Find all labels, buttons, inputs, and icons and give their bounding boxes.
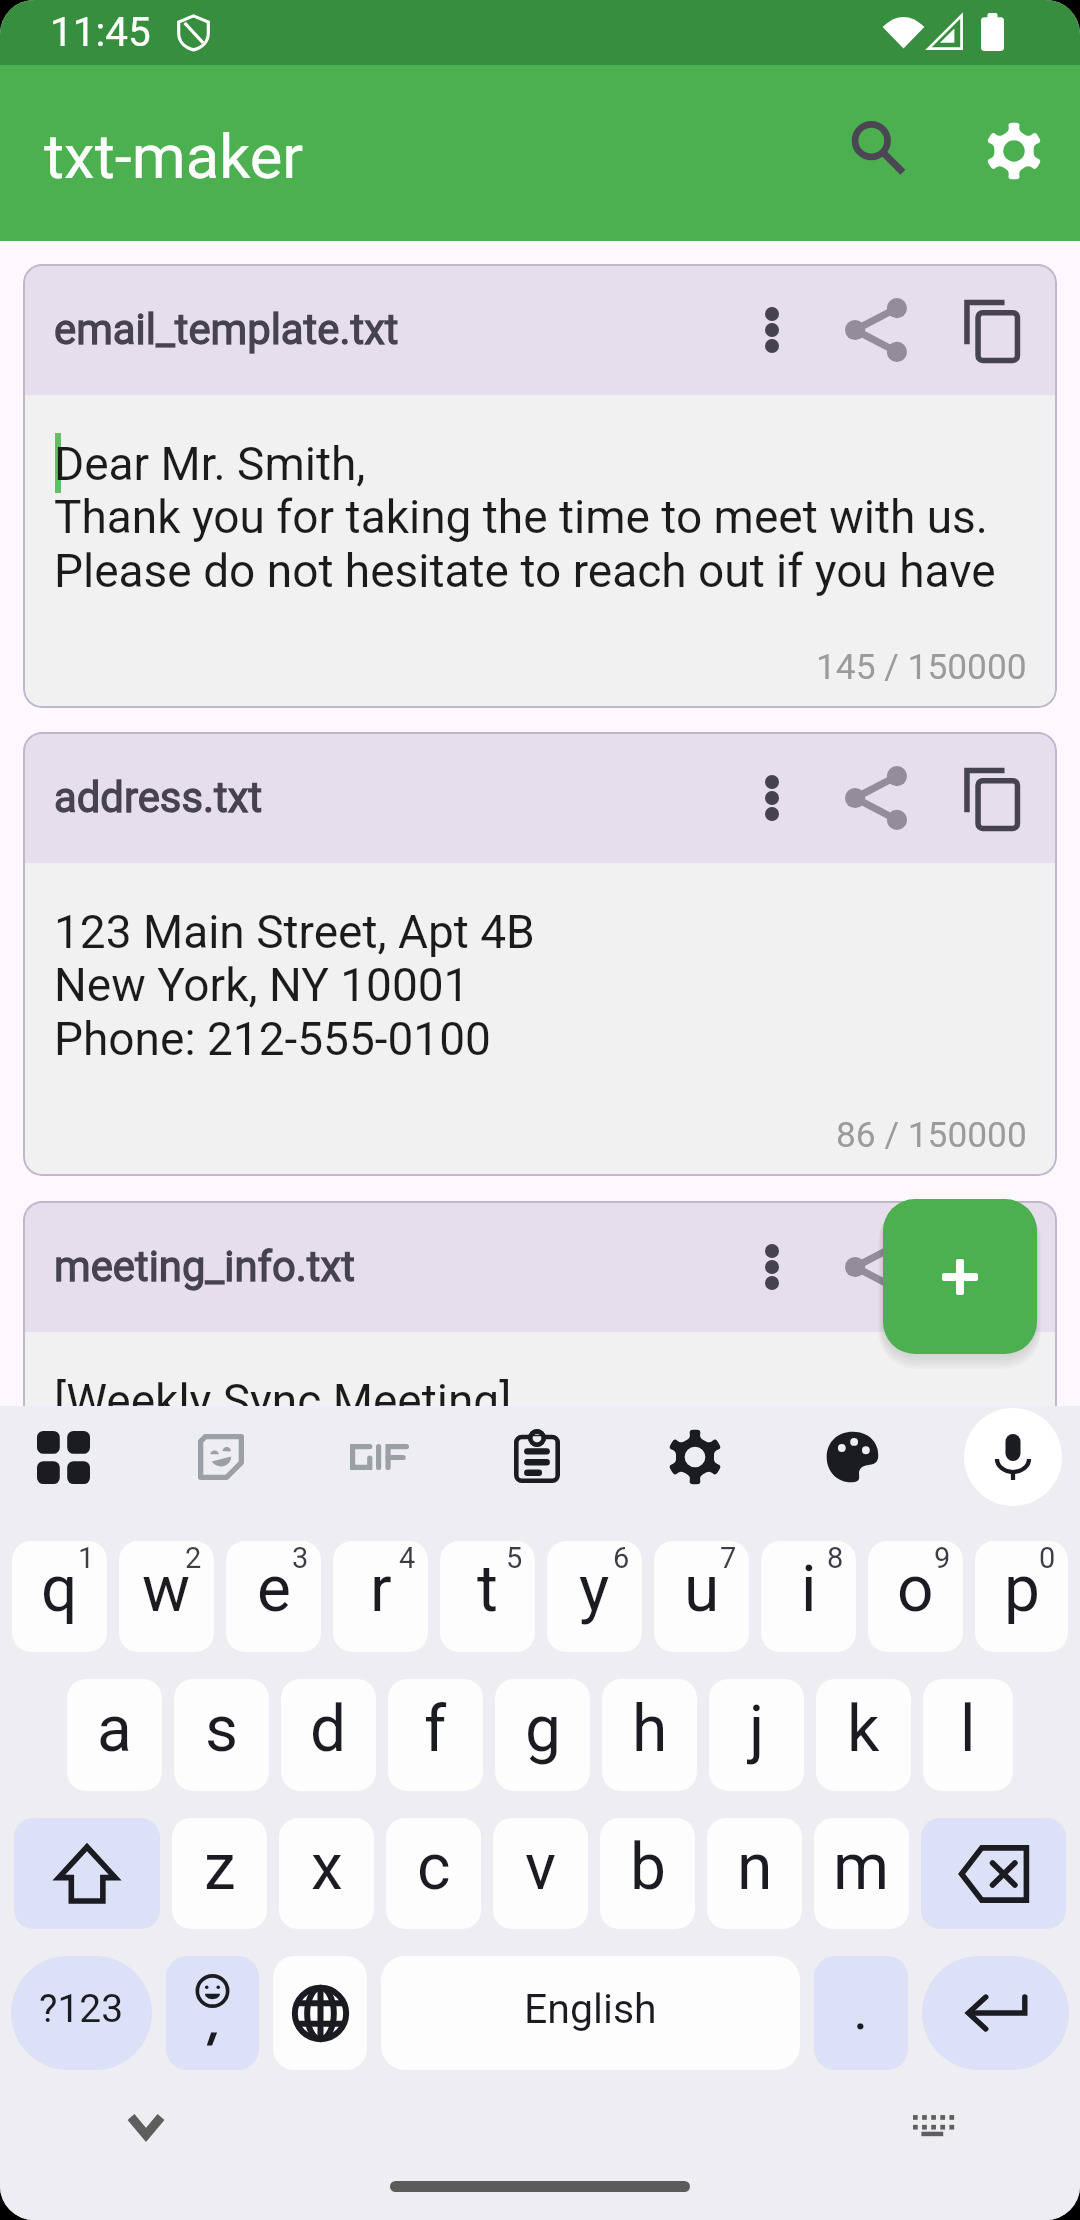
button[interactable]: Themes (806, 1410, 900, 1504)
staticText: s (205, 1692, 239, 1767)
button[interactable]: email_template.txt (23, 264, 1057, 708)
staticText: u (684, 1552, 720, 1627)
button[interactable]: l (923, 1679, 1013, 1791)
button[interactable]: meeting_info.txt (23, 1201, 1057, 1645)
staticText: x (311, 1830, 343, 1905)
button[interactable]: Add new file (883, 1199, 1037, 1354)
staticText: 120 / 150000 (816, 1583, 1027, 1624)
button[interactable]: k (816, 1679, 911, 1791)
staticText: d (310, 1692, 347, 1767)
other: Backspace (921, 1818, 1066, 1929)
button[interactable]: d (281, 1679, 376, 1791)
staticText: 0 (1039, 1541, 1056, 1575)
button[interactable]: t (440, 1541, 535, 1652)
staticText: txt-maker (44, 121, 304, 193)
staticText: k (847, 1692, 880, 1767)
staticText: 11:45 (50, 8, 151, 55)
button[interactable]: i (761, 1541, 856, 1652)
button[interactable]: address.txt (23, 732, 1057, 1176)
button[interactable]: Voice input (964, 1408, 1062, 1506)
button[interactable]: p (975, 1541, 1068, 1652)
staticText: w (142, 1552, 191, 1627)
staticText: 3 (292, 1541, 309, 1575)
button[interactable]: Hide keyboard (100, 2080, 192, 2172)
button[interactable]: r (333, 1541, 428, 1652)
button[interactable]: n (707, 1818, 802, 1929)
button[interactable]: Change language (273, 1956, 367, 2070)
button[interactable]: ?123 (11, 1956, 152, 2070)
button[interactable]: u (654, 1541, 749, 1652)
staticText: p (1004, 1552, 1040, 1627)
button[interactable]: h (602, 1679, 697, 1791)
staticText: i (801, 1552, 817, 1627)
staticText: 1 (78, 1541, 95, 1575)
button[interactable]: Emoji (166, 1956, 259, 2070)
staticText: 4 (399, 1541, 416, 1575)
staticText: t (477, 1552, 498, 1627)
button[interactable]: Backspace (921, 1818, 1066, 1929)
button[interactable]: f (388, 1679, 483, 1791)
other: Emoji (166, 1956, 259, 2070)
button[interactable]: x (279, 1818, 374, 1929)
button[interactable]: Copy (943, 1219, 1039, 1315)
button[interactable]: Share (828, 1219, 924, 1315)
button[interactable]: Stickers (174, 1410, 268, 1504)
other: Change language (273, 1956, 367, 2070)
button[interactable]: Clipboard (490, 1410, 584, 1504)
button[interactable]: More options (732, 290, 812, 370)
button[interactable]: Enter (922, 1956, 1069, 2070)
staticText: . (853, 1975, 869, 2043)
button[interactable]: Share (828, 750, 924, 846)
button[interactable]: Keyboard settings (648, 1410, 742, 1504)
button[interactable]: a (67, 1679, 162, 1791)
staticText: 2 (185, 1541, 202, 1575)
staticText: ?123 (39, 1986, 124, 2032)
staticText: email_template.txt (54, 305, 399, 354)
staticText: o (897, 1552, 934, 1627)
staticText: English (524, 1985, 657, 2033)
staticText: Dear Mr. Smith, Thank you for taking the… (54, 437, 996, 599)
button[interactable]: y (547, 1541, 642, 1652)
staticText: v (525, 1830, 556, 1905)
button[interactable]: j (709, 1679, 804, 1791)
button[interactable]: s (174, 1679, 269, 1791)
staticText: e (257, 1552, 291, 1627)
button[interactable]: g (495, 1679, 590, 1791)
staticText: 7 (720, 1541, 737, 1575)
button[interactable]: Copy (943, 750, 1039, 846)
button[interactable]: v (493, 1818, 588, 1929)
button[interactable]: z (172, 1818, 267, 1929)
button[interactable]: e (226, 1541, 321, 1652)
button[interactable]: m (814, 1818, 909, 1929)
button[interactable]: Apps (16, 1410, 110, 1504)
button[interactable]: More options (732, 1227, 812, 1307)
button[interactable]: Switch keyboard (888, 2080, 980, 2172)
staticText: y (579, 1552, 610, 1627)
button[interactable]: GIF (332, 1410, 426, 1504)
staticText: 9 (934, 1541, 951, 1575)
button[interactable]: English (381, 1956, 800, 2070)
button[interactable]: c (386, 1818, 481, 1929)
button[interactable]: . (814, 1956, 908, 2070)
staticText: meeting_info.txt (54, 1242, 355, 1291)
button[interactable]: More options (732, 758, 812, 838)
staticText: address.txt (54, 773, 263, 822)
staticText: 86 / 150000 (836, 1114, 1027, 1155)
button[interactable]: o (868, 1541, 963, 1652)
button[interactable]: Shift (14, 1818, 160, 1929)
staticText: r (370, 1552, 392, 1627)
staticText: 123 Main Street, Apt 4B New York, NY 100… (54, 905, 535, 1067)
button[interactable]: Share (828, 282, 924, 378)
staticText: h (632, 1692, 668, 1767)
button[interactable]: Search (830, 100, 926, 196)
button[interactable]: Settings (966, 103, 1062, 199)
staticText: [Weekly Sync Meeting] Time: Monday 10:00… (54, 1374, 663, 1536)
staticText: g (525, 1692, 561, 1767)
button[interactable]: Copy (943, 282, 1039, 378)
button[interactable]: b (600, 1818, 695, 1929)
staticText: 8 (827, 1541, 844, 1575)
staticText: f (424, 1692, 447, 1767)
button[interactable]: w (119, 1541, 214, 1652)
staticText: 145 / 150000 (816, 646, 1027, 687)
button[interactable]: q (12, 1541, 107, 1652)
